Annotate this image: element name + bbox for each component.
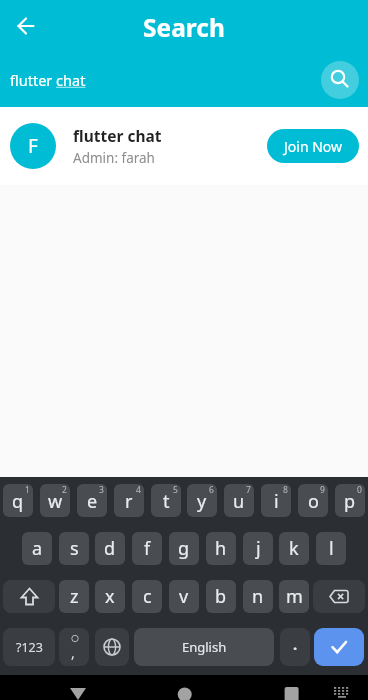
button[interactable]: u [224,484,254,517]
staticText: y [197,489,207,514]
staticText: 8 [283,484,288,496]
staticText: o [308,489,319,514]
staticText: F [28,133,38,159]
button[interactable]: w [40,484,70,517]
button[interactable]: l [316,532,346,565]
button[interactable]: b [206,580,236,613]
button[interactable]: r [114,484,144,517]
staticText: t [163,489,170,514]
staticText: 5 [173,484,178,496]
button[interactable]: , [59,628,89,666]
staticText: n [252,584,264,609]
button[interactable]: f [132,532,162,565]
button[interactable]: t [151,484,181,517]
staticText: 1 [25,484,30,496]
staticText: 6 [209,484,214,496]
staticText: 9 [320,484,325,496]
staticText: h [215,536,227,561]
staticText: . [293,634,298,654]
staticText: w [48,489,63,514]
staticText: 3 [99,484,104,496]
button[interactable] [321,61,359,99]
button[interactable] [3,580,55,613]
staticText: Join Now [284,137,343,156]
staticText: , [71,643,75,662]
button[interactable]: English [134,628,274,666]
button[interactable] [313,580,365,613]
staticText: 7 [246,484,251,496]
staticText: z [70,584,79,609]
staticText: flutter chat [73,125,162,146]
staticText: x [105,584,115,609]
button[interactable]: p [335,484,365,517]
button[interactable]: g [169,532,199,565]
staticText: Search [143,11,225,44]
button[interactable]: . [280,628,310,666]
staticText: f [144,536,151,561]
button[interactable]: d [95,532,125,565]
staticText: d [104,536,116,561]
button[interactable]: e [77,484,107,517]
button[interactable]: s [59,532,89,565]
staticText: a [32,536,43,561]
staticText: Admin: farah [73,149,155,167]
button[interactable] [8,8,44,44]
button[interactable] [62,675,94,700]
button[interactable]: x [95,580,125,613]
staticText: 0 [357,484,362,496]
staticText: q [12,489,24,514]
staticText: 4 [136,484,141,496]
staticText: e [87,489,98,514]
button[interactable] [95,628,129,666]
button[interactable]: i [261,484,291,517]
button[interactable]: z [59,580,89,613]
staticText: c [143,584,152,609]
button[interactable]: F [0,107,368,185]
staticText: v [179,584,189,609]
staticText: p [344,489,356,514]
button[interactable]: v [169,580,199,613]
staticText: u [233,489,245,514]
staticText: k [289,536,299,561]
button[interactable] [330,675,358,700]
button[interactable] [168,675,200,700]
staticText: j [256,536,261,561]
button[interactable]: ?123 [3,628,55,666]
button[interactable] [275,675,307,700]
button[interactable]: c [132,580,162,613]
button[interactable]: k [279,532,309,565]
button[interactable]: q [3,484,33,517]
button[interactable]: a [22,532,52,565]
staticText: flutter chat [10,70,86,90]
staticText: English [182,638,227,656]
button[interactable] [314,628,364,666]
staticText: s [70,536,79,561]
button[interactable]: h [206,532,236,565]
button[interactable]: o [298,484,328,517]
button[interactable]: y [187,484,217,517]
button[interactable]: Join Now [267,129,359,163]
button[interactable]: n [243,580,273,613]
button[interactable]: j [243,532,273,565]
staticText: ?123 [16,639,43,656]
staticText: 2 [62,484,67,496]
staticText: r [125,489,133,514]
button[interactable]: m [279,580,309,613]
staticText: l [329,536,334,561]
staticText: b [215,584,227,609]
staticText: m [286,584,303,609]
staticText: g [178,536,190,561]
staticText: i [274,489,279,514]
